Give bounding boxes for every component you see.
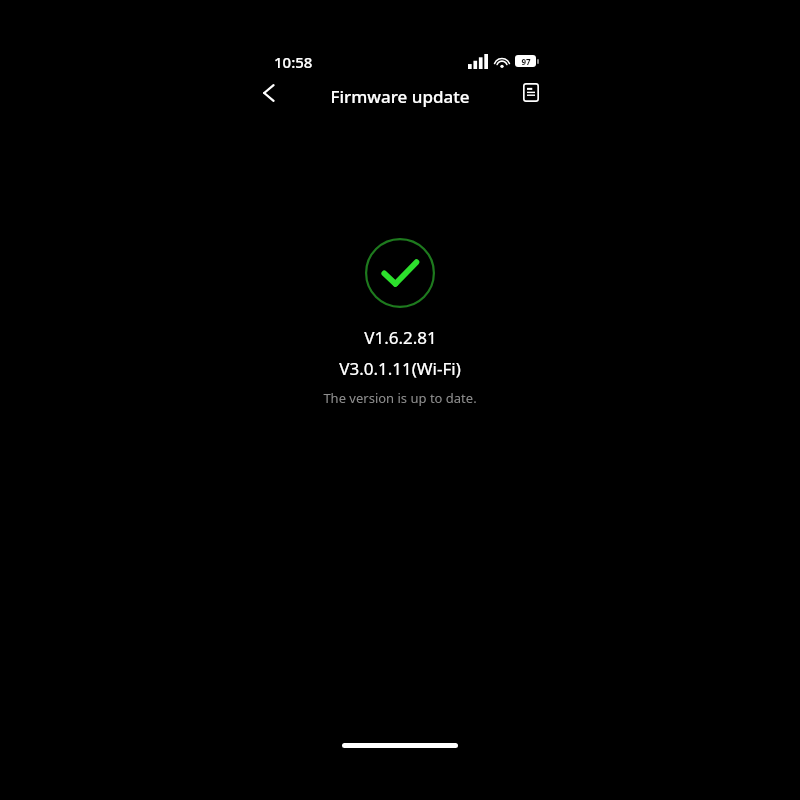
staticText: 97 (521, 56, 531, 67)
button[interactable]: Back (247, 73, 291, 112)
button[interactable]: Update log (509, 73, 553, 112)
staticText: 10:58 (274, 52, 313, 72)
staticText: Firmware update (330, 85, 470, 108)
staticText: The version is up to date. (323, 389, 477, 407)
staticText: V3.0.1.11(Wi-Fi) (339, 357, 461, 380)
staticText: V1.6.2.81 (364, 326, 437, 349)
